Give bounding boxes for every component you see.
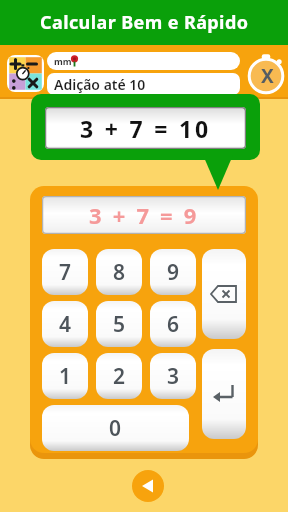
staticText: 4	[59, 310, 72, 339]
button[interactable]: 9	[150, 249, 196, 295]
button[interactable]: 1	[42, 353, 88, 399]
button[interactable]	[7, 55, 44, 92]
button[interactable]: 7	[42, 249, 88, 295]
button[interactable]	[202, 249, 246, 339]
staticText: Adição até 10	[54, 75, 146, 94]
button[interactable]: 5	[96, 301, 142, 347]
staticText: mm	[54, 55, 72, 67]
button[interactable]: Adição até 10	[47, 73, 240, 95]
staticText: 2	[113, 362, 126, 391]
button[interactable]	[202, 349, 246, 439]
button[interactable]: 0	[42, 405, 189, 451]
staticText: Calcular Bem e Rápido	[40, 10, 249, 35]
staticText: X	[261, 63, 274, 89]
button[interactable]: 6	[150, 301, 196, 347]
staticText: 3 + 7 = 9	[89, 200, 200, 230]
button[interactable]: 8	[96, 249, 142, 295]
staticText: 7	[59, 258, 72, 287]
button[interactable]: 2	[96, 353, 142, 399]
staticText: 9	[167, 258, 180, 287]
staticText: 5	[113, 310, 126, 339]
button[interactable]: 4	[42, 301, 88, 347]
button[interactable]: X	[246, 50, 288, 96]
staticText: 8	[113, 258, 126, 287]
staticText: 3	[167, 362, 180, 391]
button[interactable]: mm	[47, 52, 240, 70]
staticText: 1	[59, 362, 72, 391]
staticText: 3 + 7 = 10	[80, 113, 211, 144]
button[interactable]: 3	[150, 353, 196, 399]
staticText: 0	[109, 414, 122, 443]
button[interactable]	[132, 470, 164, 502]
button[interactable]: 3 + 7 = 10	[45, 107, 246, 149]
staticText: 6	[167, 310, 180, 339]
